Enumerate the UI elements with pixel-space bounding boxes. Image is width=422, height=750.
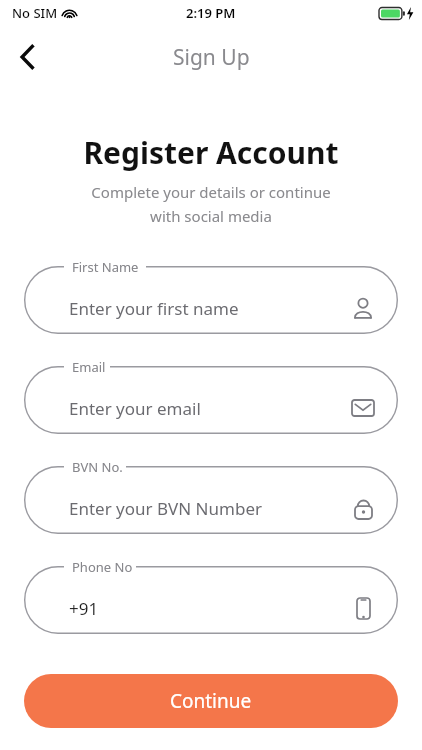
button[interactable]: Back — [10, 40, 44, 74]
button[interactable]: First Name — [24, 266, 398, 334]
staticText: Phone No — [72, 558, 133, 576]
button[interactable]: Phone No — [24, 566, 398, 634]
staticText: BVN No. — [72, 458, 123, 476]
button[interactable]: Email — [24, 366, 398, 434]
staticText: Register Account — [0, 132, 422, 173]
staticText: Sign Up — [173, 43, 250, 72]
staticText: First Name — [72, 258, 139, 276]
staticText: Enter your BVN Number — [69, 497, 263, 520]
staticText: Email — [72, 358, 106, 376]
staticText: Continue — [170, 688, 252, 714]
button[interactable]: Continue — [24, 674, 398, 728]
staticText: +91 — [69, 597, 99, 620]
staticText: Complete your details or continue with s… — [36, 182, 386, 226]
button[interactable]: BVN No. — [24, 466, 398, 534]
staticText: No SIM — [12, 4, 58, 22]
staticText: Enter your first name — [69, 297, 239, 320]
staticText: 2:19 PM — [186, 4, 236, 22]
staticText: Enter your email — [69, 397, 201, 420]
